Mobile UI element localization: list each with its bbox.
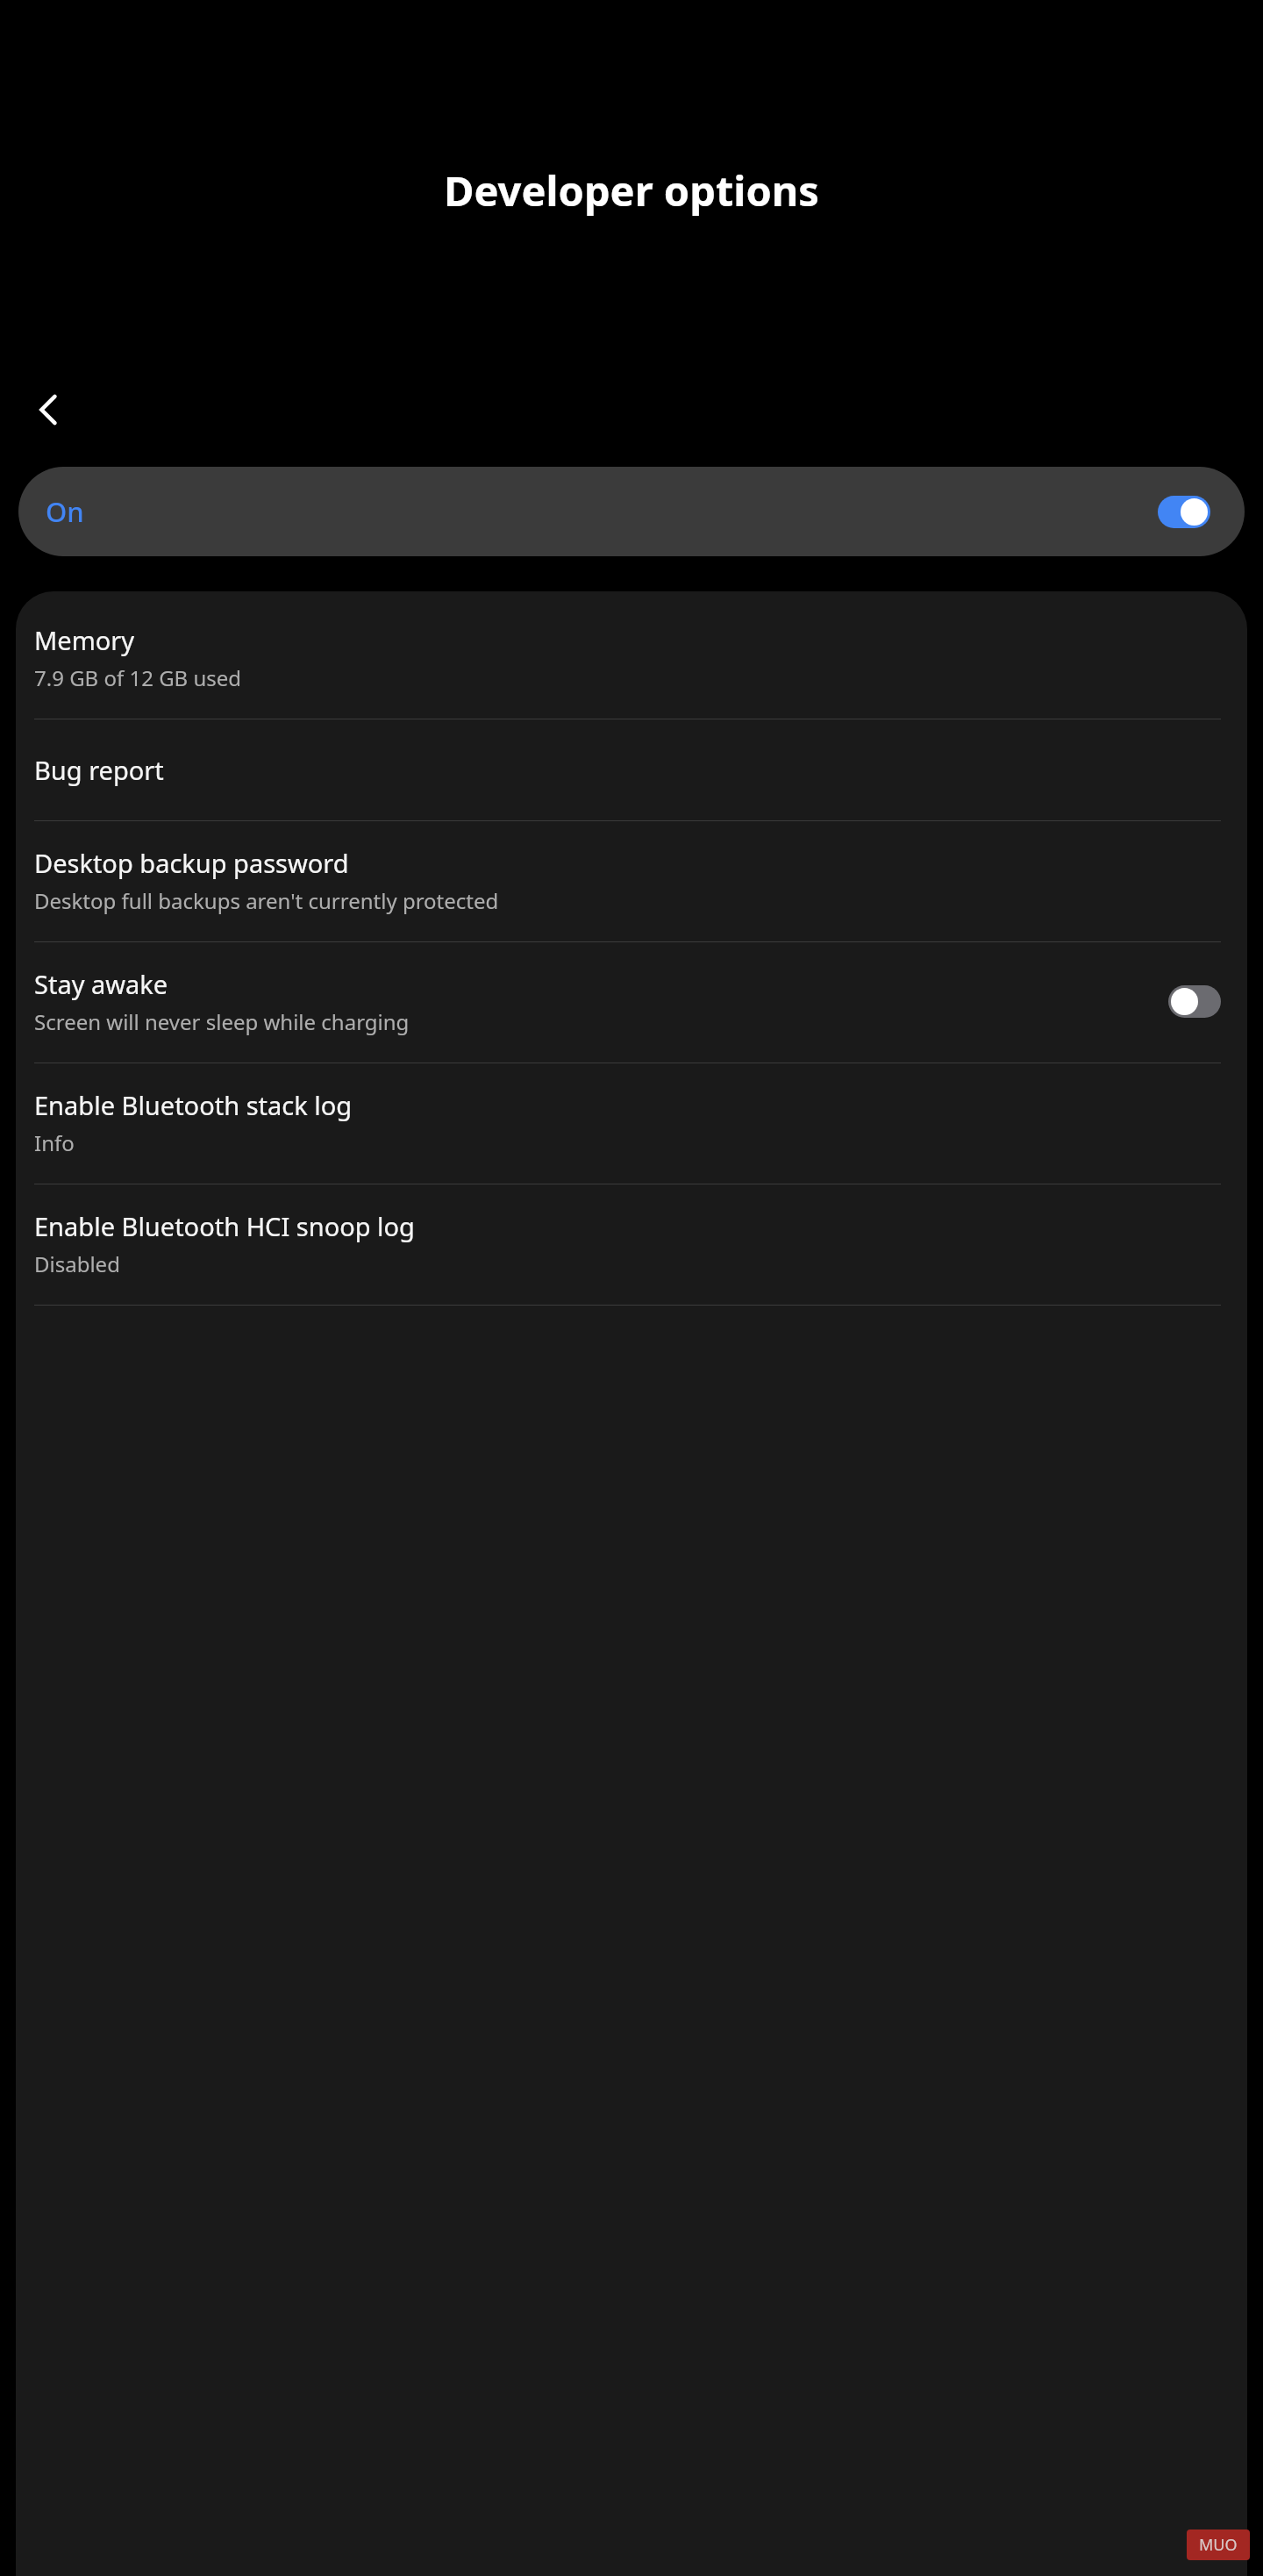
staticText: Info bbox=[34, 1128, 75, 1157]
button[interactable]: Desktop backup password bbox=[16, 821, 1247, 941]
button[interactable]: Bug report bbox=[16, 719, 1247, 820]
staticText: Screen will never sleep while charging bbox=[34, 1007, 410, 1036]
button[interactable]: Developer options on bbox=[1158, 496, 1210, 528]
staticText: Desktop backup password bbox=[34, 846, 349, 880]
staticText: Desktop full backups aren't currently pr… bbox=[34, 886, 499, 915]
button[interactable]: Stay awake toggle bbox=[1168, 985, 1221, 1018]
button[interactable]: Stay awake bbox=[16, 942, 1247, 1063]
staticText: Memory bbox=[34, 623, 135, 657]
button[interactable]: Memory bbox=[16, 598, 1247, 719]
button[interactable]: Enable Bluetooth HCI snoop log bbox=[16, 1184, 1247, 1305]
staticText: MUO bbox=[1199, 2534, 1238, 2556]
staticText: Stay awake bbox=[34, 967, 168, 1001]
staticText: Disabled bbox=[34, 1249, 120, 1278]
button[interactable]: Enable Bluetooth stack log bbox=[16, 1063, 1247, 1184]
staticText: Bug report bbox=[34, 753, 164, 787]
staticText: Enable Bluetooth HCI snoop log bbox=[34, 1209, 415, 1243]
staticText: Enable Bluetooth stack log bbox=[34, 1088, 353, 1122]
staticText: On bbox=[46, 493, 1158, 530]
staticText: 7.9 GB of 12 GB used bbox=[34, 663, 242, 692]
button[interactable]: On bbox=[18, 467, 1245, 556]
button[interactable]: Back bbox=[25, 385, 74, 434]
staticText: Developer options bbox=[21, 162, 1242, 218]
